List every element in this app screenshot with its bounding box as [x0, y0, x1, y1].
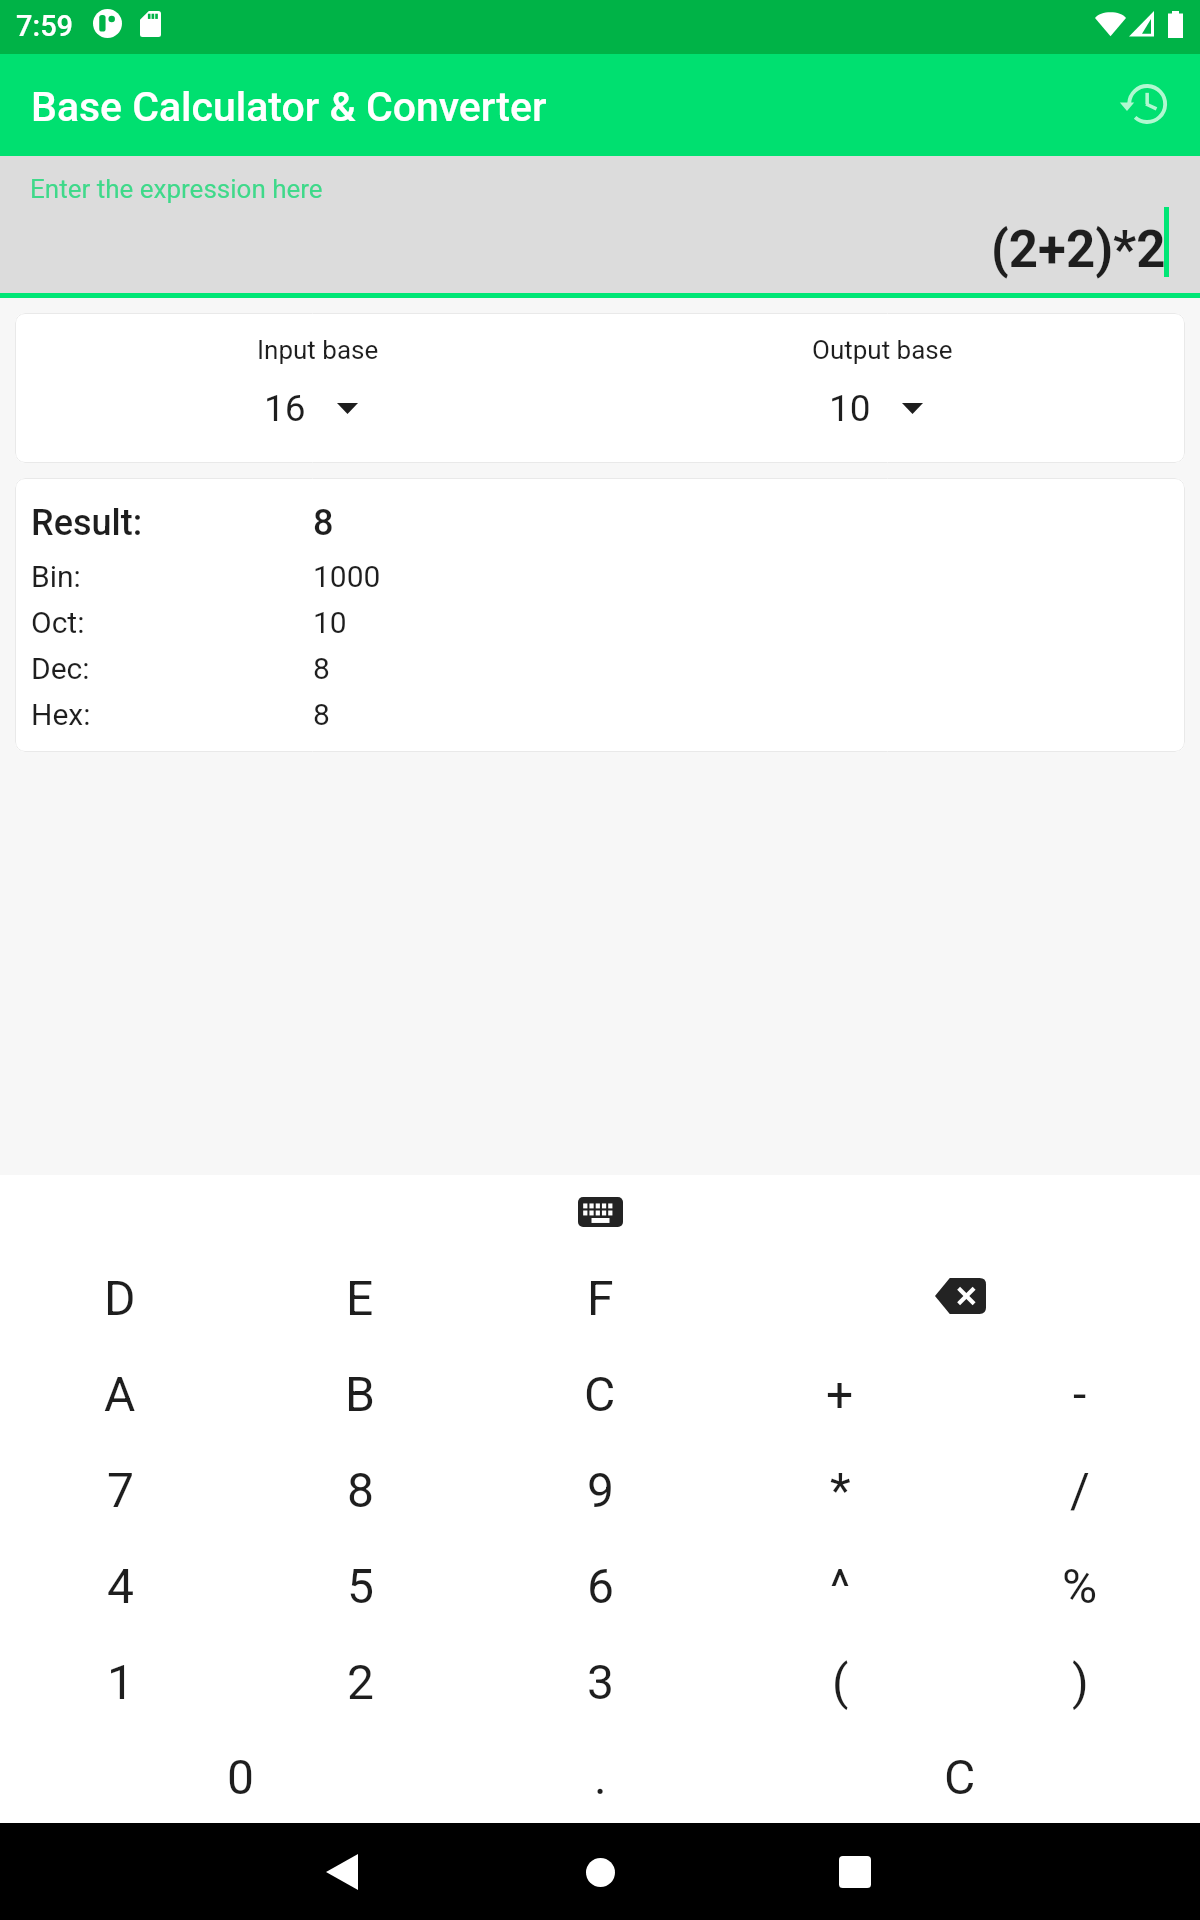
- staticText: B: [345, 1366, 375, 1422]
- staticText: F: [587, 1270, 614, 1326]
- button[interactable]: Enter the expression here: [0, 156, 1200, 293]
- staticText: Bin:: [31, 559, 81, 594]
- button[interactable]: 1: [0, 1634, 240, 1730]
- button[interactable]: Show keyboard: [564, 1186, 636, 1240]
- button[interactable]: History: [1105, 63, 1185, 145]
- button[interactable]: Recent apps: [819, 1836, 891, 1908]
- staticText: Base Calculator & Converter: [31, 83, 547, 131]
- staticText: A: [104, 1366, 136, 1422]
- button[interactable]: 7: [0, 1442, 240, 1538]
- staticText: 5: [347, 1558, 374, 1614]
- button[interactable]: 3: [480, 1634, 720, 1730]
- staticText: 4: [107, 1558, 134, 1614]
- button[interactable]: .: [480, 1730, 720, 1823]
- button[interactable]: C: [480, 1346, 720, 1442]
- staticText: Enter the expression here: [30, 174, 323, 204]
- button[interactable]: A: [0, 1346, 240, 1442]
- button[interactable]: F: [480, 1250, 720, 1346]
- staticText: 10: [313, 605, 347, 640]
- staticText: Input base: [257, 335, 379, 365]
- button[interactable]: ^: [720, 1538, 960, 1634]
- staticText: /: [1070, 1462, 1090, 1518]
- staticText: 8: [313, 502, 334, 544]
- staticText: E: [346, 1270, 374, 1326]
- staticText: Output base: [812, 335, 953, 365]
- staticText: Result:: [31, 502, 143, 544]
- staticText: 8: [313, 697, 330, 732]
- button[interactable]: *: [720, 1442, 960, 1538]
- staticText: Dec:: [31, 651, 90, 686]
- staticText: Oct:: [31, 605, 85, 640]
- button[interactable]: Backspace: [720, 1250, 1200, 1346]
- button[interactable]: (: [720, 1634, 960, 1730]
- staticText: C: [944, 1749, 976, 1805]
- button[interactable]: -: [960, 1346, 1200, 1442]
- button[interactable]: 2: [240, 1634, 480, 1730]
- staticText: 8: [313, 651, 330, 686]
- staticText: 3: [587, 1654, 614, 1710]
- button[interactable]: Input base: [35, 313, 600, 463]
- staticText: 6: [587, 1558, 614, 1614]
- staticText: +: [826, 1366, 854, 1422]
- button[interactable]: Home: [564, 1836, 636, 1908]
- staticText: 0: [227, 1749, 254, 1805]
- button[interactable]: 4: [0, 1538, 240, 1634]
- staticText: Hex:: [31, 697, 91, 732]
- button[interactable]: Output base: [600, 313, 1165, 463]
- staticText: 8: [347, 1462, 374, 1518]
- button[interactable]: /: [960, 1442, 1200, 1538]
- button[interactable]: +: [720, 1346, 960, 1442]
- staticText: 1: [107, 1654, 134, 1710]
- staticText: 9: [587, 1462, 614, 1518]
- staticText: ): [1072, 1654, 1089, 1710]
- button[interactable]: 8: [240, 1442, 480, 1538]
- button[interactable]: E: [240, 1250, 480, 1346]
- button[interactable]: ): [960, 1634, 1200, 1730]
- staticText: 2: [347, 1654, 374, 1710]
- button[interactable]: C: [720, 1730, 1200, 1823]
- staticText: .: [594, 1749, 607, 1805]
- staticText: (2+2)*2: [991, 220, 1166, 280]
- button[interactable]: D: [0, 1250, 240, 1346]
- staticText: -: [1073, 1366, 1087, 1422]
- staticText: (: [832, 1654, 849, 1710]
- button[interactable]: 6: [480, 1538, 720, 1634]
- button[interactable]: B: [240, 1346, 480, 1442]
- staticText: ^: [830, 1558, 851, 1614]
- staticText: D: [104, 1270, 136, 1326]
- button[interactable]: 5: [240, 1538, 480, 1634]
- button[interactable]: %: [960, 1538, 1200, 1634]
- staticText: 1000: [313, 559, 381, 594]
- staticText: C: [584, 1366, 616, 1422]
- button[interactable]: 0: [0, 1730, 480, 1823]
- staticText: 7: [107, 1462, 134, 1518]
- button[interactable]: 9: [480, 1442, 720, 1538]
- staticText: *: [830, 1462, 851, 1518]
- button[interactable]: Back: [306, 1836, 378, 1908]
- staticText: %: [1062, 1558, 1098, 1614]
- staticText: 7:59: [16, 9, 74, 43]
- staticText: 10: [829, 387, 871, 430]
- staticText: 16: [264, 387, 306, 430]
